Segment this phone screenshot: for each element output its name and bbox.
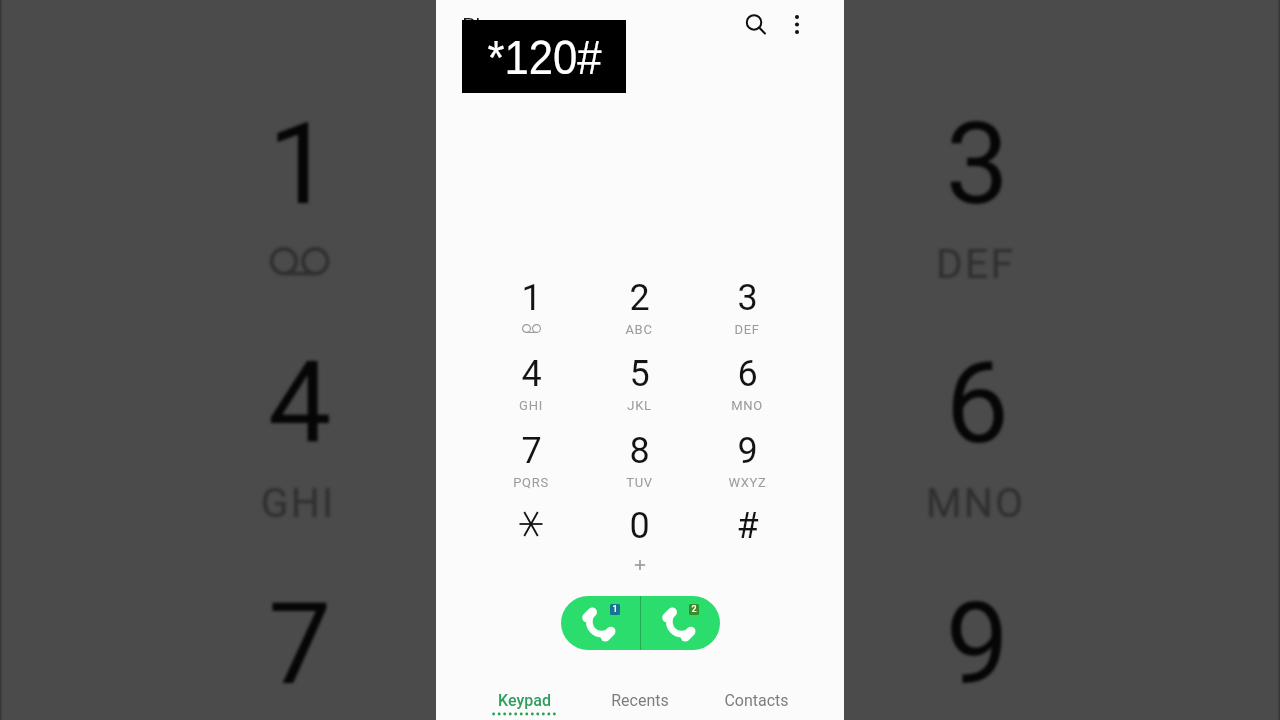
staticText: *120#: [487, 30, 602, 84]
staticText: 9: [737, 430, 758, 472]
staticText: 9: [944, 580, 1010, 711]
staticText: 8: [605, 580, 671, 711]
button[interactable]: 9: [693, 419, 801, 503]
staticText: 3: [737, 277, 758, 319]
staticText: 3: [944, 100, 1010, 231]
staticText: 8: [629, 430, 650, 472]
staticText: MNO: [925, 479, 1026, 526]
button[interactable]: 5: [467, 303, 806, 567]
button[interactable]: 7: [477, 419, 585, 503]
staticText: 2: [691, 604, 697, 615]
button[interactable]: Call with SIM 2: [640, 596, 720, 650]
button[interactable]: Call with SIM 1: [561, 596, 640, 650]
button[interactable]: 0: [585, 494, 693, 578]
button[interactable]: Search: [735, 4, 775, 44]
staticText: JKL: [599, 479, 678, 526]
button[interactable]: 9: [806, 545, 1145, 720]
staticText: 1: [612, 604, 618, 615]
button[interactable]: 6: [806, 303, 1145, 567]
staticText: 5: [605, 338, 671, 470]
button[interactable]: [477, 494, 585, 578]
staticText: 6: [737, 353, 758, 395]
button[interactable]: Contacts: [698, 664, 814, 720]
button[interactable]: 4: [477, 342, 585, 426]
button[interactable]: 4: [129, 303, 467, 567]
staticText: GHI: [260, 479, 336, 526]
button[interactable]: 7: [129, 545, 467, 720]
staticText: 2: [629, 277, 650, 319]
staticText: WXYZ: [728, 475, 767, 490]
staticText: ABC: [625, 322, 653, 337]
button[interactable]: Recents: [582, 664, 698, 720]
staticText: PQRS: [513, 475, 549, 490]
button[interactable]: #: [693, 494, 801, 578]
button[interactable]: 3: [806, 65, 1145, 329]
button[interactable]: 3: [693, 266, 801, 350]
button[interactable]: Keypad: [466, 664, 582, 720]
button[interactable]: 2: [585, 266, 693, 350]
staticText: 1: [267, 100, 333, 231]
staticText: Phone: [462, 14, 522, 39]
staticText: 6: [944, 338, 1010, 470]
staticText: 7: [521, 430, 542, 472]
staticText: Contacts: [724, 691, 789, 710]
staticText: MNO: [731, 398, 763, 413]
staticText: DEF: [935, 241, 1016, 288]
button[interactable]: 6: [693, 342, 801, 426]
staticText: TUV: [626, 475, 653, 490]
staticText: 0: [629, 505, 650, 547]
staticText: 5: [629, 353, 650, 395]
button[interactable]: 8: [467, 545, 806, 720]
staticText: 4: [521, 353, 542, 395]
staticText: 4: [267, 338, 333, 470]
staticText: ABC: [593, 241, 681, 288]
button[interactable]: 1: [477, 266, 585, 350]
staticText: GHI: [519, 398, 543, 413]
staticText: Keypad: [498, 691, 551, 710]
staticText: #: [736, 505, 759, 547]
staticText: Recents: [611, 691, 669, 710]
staticText: JKL: [627, 398, 652, 413]
button[interactable]: More options: [777, 4, 817, 44]
button[interactable]: 8: [585, 419, 693, 503]
button[interactable]: 5: [585, 342, 693, 426]
staticText: DEF: [734, 322, 760, 337]
staticText: 7: [267, 580, 333, 711]
staticText: 1: [521, 277, 542, 319]
button[interactable]: 2: [467, 65, 806, 329]
button[interactable]: 1: [129, 65, 467, 329]
